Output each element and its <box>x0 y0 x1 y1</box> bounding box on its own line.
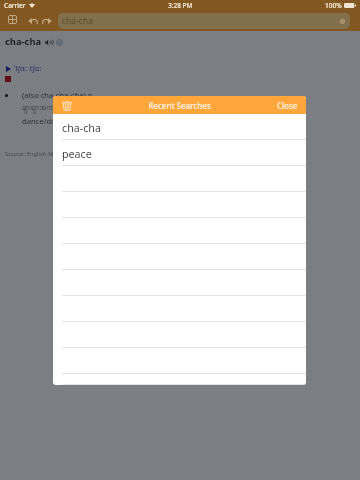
button[interactable] <box>53 192 306 218</box>
staticText: ˈtʃɑː tʃɑː <box>14 63 42 74</box>
button[interactable]: Library <box>4 11 21 28</box>
button[interactable] <box>53 374 306 385</box>
button[interactable]: cha-cha <box>58 13 350 29</box>
button[interactable]: Pronounce <box>44 38 52 46</box>
staticText: Recent Searches <box>148 100 211 111</box>
button[interactable]: Clear history <box>58 96 76 114</box>
staticText: peace <box>62 147 92 162</box>
button[interactable]: Close <box>271 96 306 114</box>
button[interactable] <box>53 270 306 296</box>
staticText: cha-cha <box>5 35 42 48</box>
staticText: cha-cha <box>62 121 101 136</box>
button[interactable]: Forward <box>38 12 55 29</box>
button[interactable] <box>53 244 306 270</box>
button[interactable] <box>53 296 306 322</box>
staticText: Carrier <box>4 1 26 10</box>
staticText: (also cha-cha-cha) n <box>22 90 93 100</box>
staticText: 100% <box>325 1 342 10</box>
button[interactable]: cha-cha <box>53 114 306 140</box>
button[interactable]: Bookmark <box>55 38 63 46</box>
button[interactable] <box>53 166 306 192</box>
staticText: Close <box>277 100 298 111</box>
button[interactable] <box>53 322 306 348</box>
button[interactable]: Back <box>24 12 41 29</box>
staticText: cha-cha <box>62 15 93 27</box>
button[interactable]: Clear text <box>338 17 347 26</box>
button[interactable]: peace <box>53 140 306 166</box>
staticText: dance/do the cha-cha <box>22 116 99 126</box>
staticText: Source: English-Myanmar Dictionary <box>5 150 104 158</box>
button[interactable] <box>53 218 306 244</box>
staticText: ချာချာအကခြင်း <box>22 103 66 114</box>
staticText: 3:28 PM <box>168 1 193 10</box>
button[interactable]: Play pronunciation <box>6 65 13 73</box>
button[interactable] <box>53 348 306 374</box>
